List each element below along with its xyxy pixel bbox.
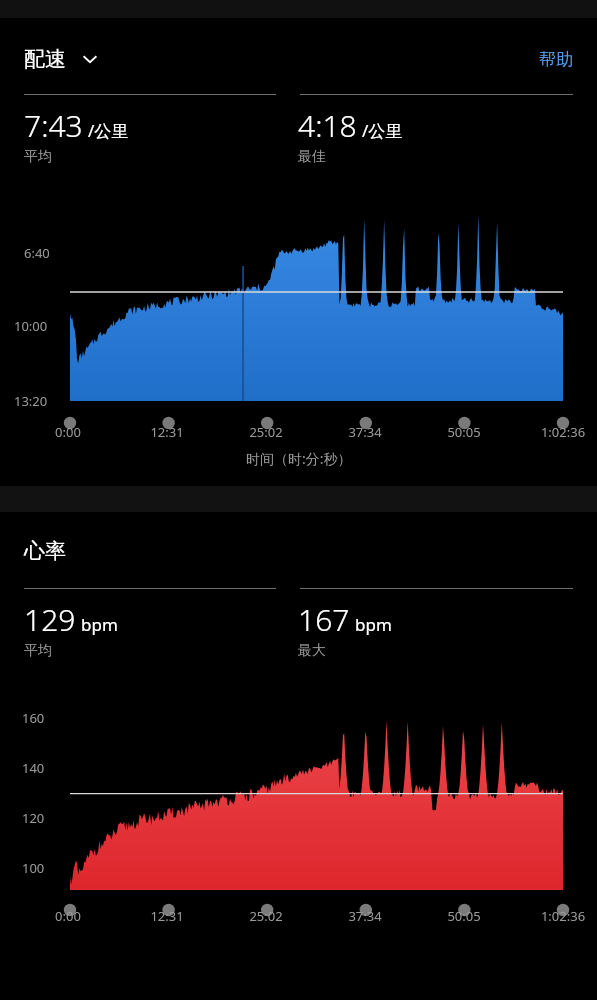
staticText: 25:02 (232, 423, 300, 441)
staticText: 160 (22, 709, 45, 727)
staticText: 100 (22, 859, 45, 877)
staticText: 1:02:36 (529, 907, 597, 925)
staticText: 6:40 (24, 244, 50, 262)
staticText: 7:43 (24, 105, 83, 146)
staticText: 最大 (298, 642, 326, 660)
button[interactable]: 心率 (24, 538, 66, 564)
staticText: 配速 (24, 46, 66, 72)
staticText: bpm (81, 613, 118, 636)
button[interactable]: 帮助 (539, 49, 573, 70)
staticText: 120 (22, 809, 45, 827)
staticText: 帮助 (539, 49, 573, 70)
staticText: 10:00 (14, 317, 48, 335)
staticText: 4:18 (298, 105, 357, 146)
staticText: 37:34 (331, 423, 399, 441)
staticText: 平均 (24, 642, 52, 660)
staticText: 0:00 (34, 907, 102, 925)
staticText: 12:31 (133, 907, 201, 925)
staticText: 最佳 (298, 148, 326, 166)
staticText: 37:34 (331, 907, 399, 925)
staticText: 平均 (24, 148, 52, 166)
staticText: 129 (24, 599, 76, 640)
staticText: /公里 (362, 119, 403, 142)
staticText: 50:05 (430, 907, 498, 925)
staticText: 0:00 (34, 423, 102, 441)
staticText: 167 (298, 599, 350, 640)
staticText: 13:20 (14, 392, 48, 410)
staticText: bpm (355, 613, 392, 636)
staticText: 心率 (24, 538, 66, 564)
staticText: 12:31 (133, 423, 201, 441)
staticText: 50:05 (430, 423, 498, 441)
other: Expand metric selector (80, 49, 100, 69)
button[interactable]: 配速 (24, 46, 100, 72)
staticText: /公里 (88, 119, 129, 142)
staticText: 1:02:36 (529, 423, 597, 441)
staticText: 25:02 (232, 907, 300, 925)
staticText: 140 (22, 759, 45, 777)
staticText: 时间（时:分:秒） (246, 449, 352, 468)
